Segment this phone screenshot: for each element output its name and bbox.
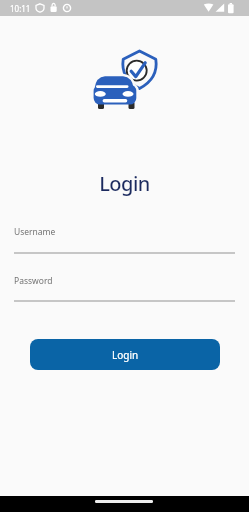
staticText: Login: [0, 170, 249, 197]
staticText: Username: [14, 226, 56, 238]
button[interactable]: Login: [30, 339, 220, 370]
staticText: Password: [14, 275, 53, 287]
staticText: 10:11: [10, 3, 31, 14]
staticText: Login: [112, 348, 139, 362]
button[interactable]: Password: [14, 271, 235, 302]
button[interactable]: Username: [14, 222, 235, 254]
